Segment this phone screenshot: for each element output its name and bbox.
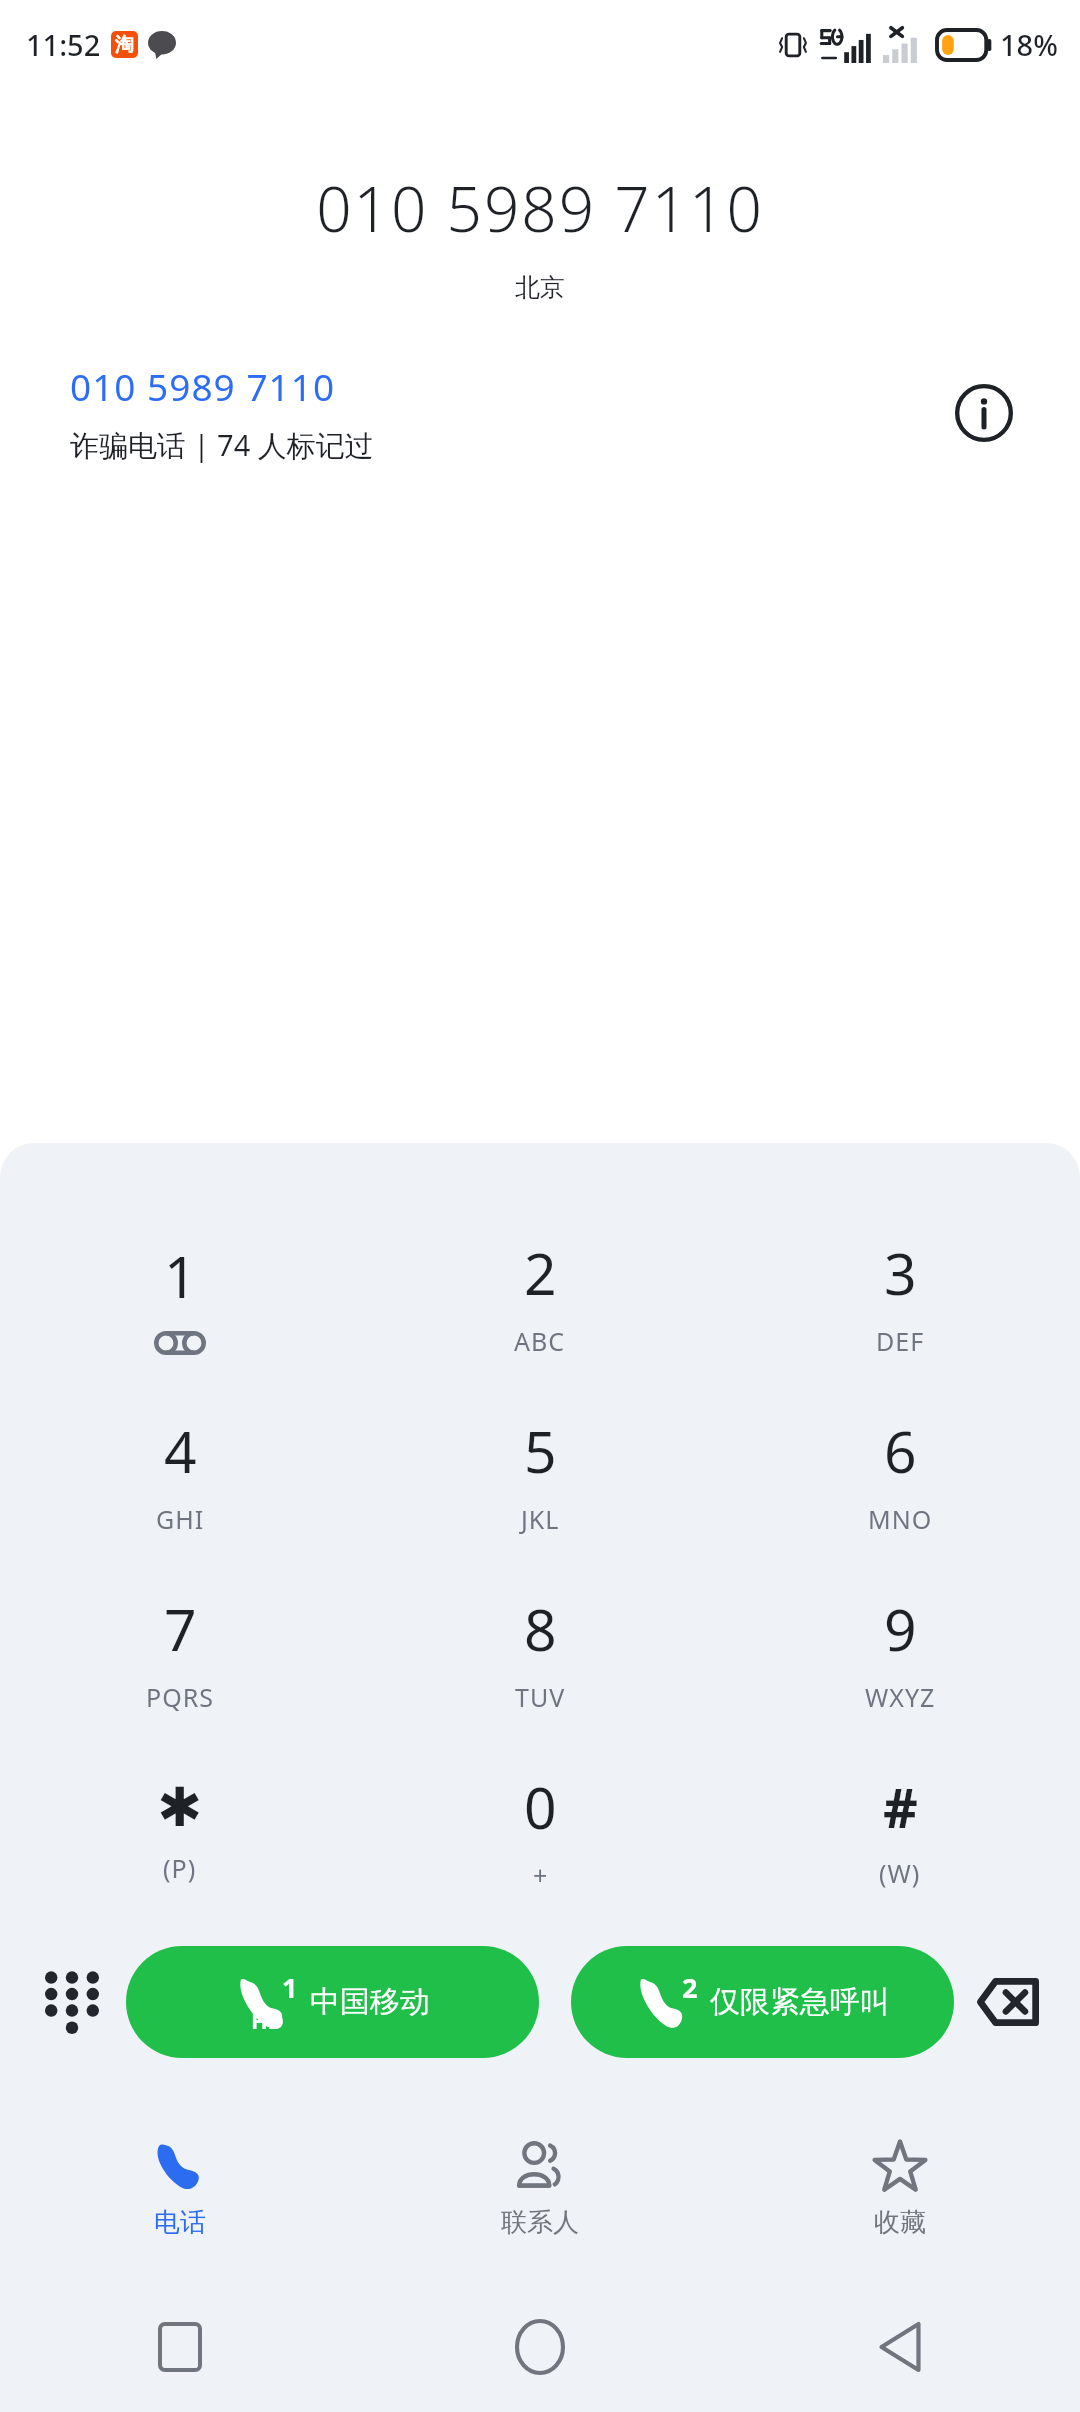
button[interactable]: Home xyxy=(360,2282,720,2412)
staticText: GHI xyxy=(156,1502,205,1536)
button[interactable]: 9 xyxy=(720,1563,1080,1741)
staticText: 010 5989 7110 xyxy=(0,166,1080,250)
button[interactable]: 3 xyxy=(720,1207,1080,1385)
staticText: PQRS xyxy=(146,1680,214,1714)
staticText: HD xyxy=(251,2005,284,2035)
staticText: 4 xyxy=(164,1412,197,1490)
button[interactable]: Recents xyxy=(0,2282,360,2412)
staticText: 11:52 xyxy=(26,25,101,64)
staticText: 7 xyxy=(164,1590,197,1668)
staticText: TUV xyxy=(515,1680,566,1714)
staticText: 2 xyxy=(682,1969,698,2006)
staticText: 3 xyxy=(884,1234,917,1312)
button[interactable]: 收藏 xyxy=(720,2113,1080,2263)
staticText: 收藏 xyxy=(874,2206,926,2239)
button[interactable]: 4 xyxy=(0,1385,360,1563)
staticText: 010 5989 7110 xyxy=(70,361,336,411)
button[interactable]: 0 xyxy=(360,1741,720,1919)
staticText: 8 xyxy=(524,1590,557,1668)
button[interactable]: # xyxy=(720,1741,1080,1919)
button[interactable]: Backspace xyxy=(954,1948,1062,2056)
button[interactable]: 5 xyxy=(360,1385,720,1563)
staticText: 5 xyxy=(524,1412,557,1490)
staticText: JKL xyxy=(521,1502,560,1536)
staticText: 北京 xyxy=(0,272,1080,303)
staticText: ABC xyxy=(514,1324,566,1358)
button[interactable]: 1 xyxy=(0,1207,360,1385)
staticText: ✱ xyxy=(157,1776,203,1839)
staticText: (P) xyxy=(163,1851,197,1885)
staticText: 9 xyxy=(884,1590,917,1668)
button[interactable]: 2 xyxy=(360,1207,720,1385)
staticText: MNO xyxy=(868,1502,933,1536)
staticText: 0 xyxy=(524,1768,557,1846)
button[interactable]: Number details xyxy=(946,375,1022,451)
staticText: 淘 xyxy=(115,33,134,57)
staticText: DEF xyxy=(876,1324,925,1358)
staticText: + xyxy=(533,1858,549,1892)
button[interactable]: 8 xyxy=(360,1563,720,1741)
button[interactable]: 电话 xyxy=(0,2113,360,2263)
staticText: 电话 xyxy=(154,2206,206,2239)
button[interactable]: 2 xyxy=(571,1946,954,2058)
staticText: WXYZ xyxy=(865,1680,936,1714)
staticText: 18% xyxy=(1000,25,1058,64)
button[interactable]: 7 xyxy=(0,1563,360,1741)
button[interactable]: Hide keypad xyxy=(18,1948,126,2056)
staticText: (W) xyxy=(879,1856,921,1890)
staticText: 1 xyxy=(164,1237,197,1315)
staticText: 1 xyxy=(282,1969,298,2006)
button[interactable]: Back xyxy=(720,2282,1080,2412)
staticText: 2 xyxy=(524,1234,557,1312)
button[interactable]: ✱ xyxy=(0,1741,360,1919)
staticText: 6 xyxy=(884,1412,917,1490)
staticText: 联系人 xyxy=(501,2206,579,2239)
button[interactable]: 6 xyxy=(720,1385,1080,1563)
staticText: 诈骗电话 | 74 人标记过 xyxy=(70,425,374,465)
button[interactable]: 联系人 xyxy=(360,2113,720,2263)
staticText: 仅限紧急呼叫 xyxy=(710,1983,890,2021)
staticText: 中国移动 xyxy=(310,1983,430,2021)
button[interactable]: 1 xyxy=(126,1946,539,2058)
staticText: # xyxy=(883,1770,918,1844)
